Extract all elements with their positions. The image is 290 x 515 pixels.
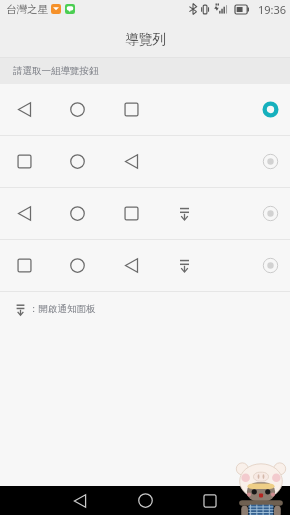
button[interactable]: Recents	[195, 486, 225, 515]
button[interactable]: Back	[65, 486, 95, 515]
staticText: ：開啟通知面板	[29, 303, 96, 315]
button[interactable]	[0, 240, 290, 291]
staticText: 導覽列	[125, 31, 166, 48]
button[interactable]: Home	[130, 486, 160, 515]
staticText: 台灣之星	[6, 3, 48, 16]
staticText: 請選取一組導覽按鈕	[13, 65, 99, 77]
button[interactable]	[0, 188, 290, 239]
button[interactable]	[0, 136, 290, 187]
staticText: 19:36	[258, 2, 287, 17]
button[interactable]	[0, 84, 290, 135]
